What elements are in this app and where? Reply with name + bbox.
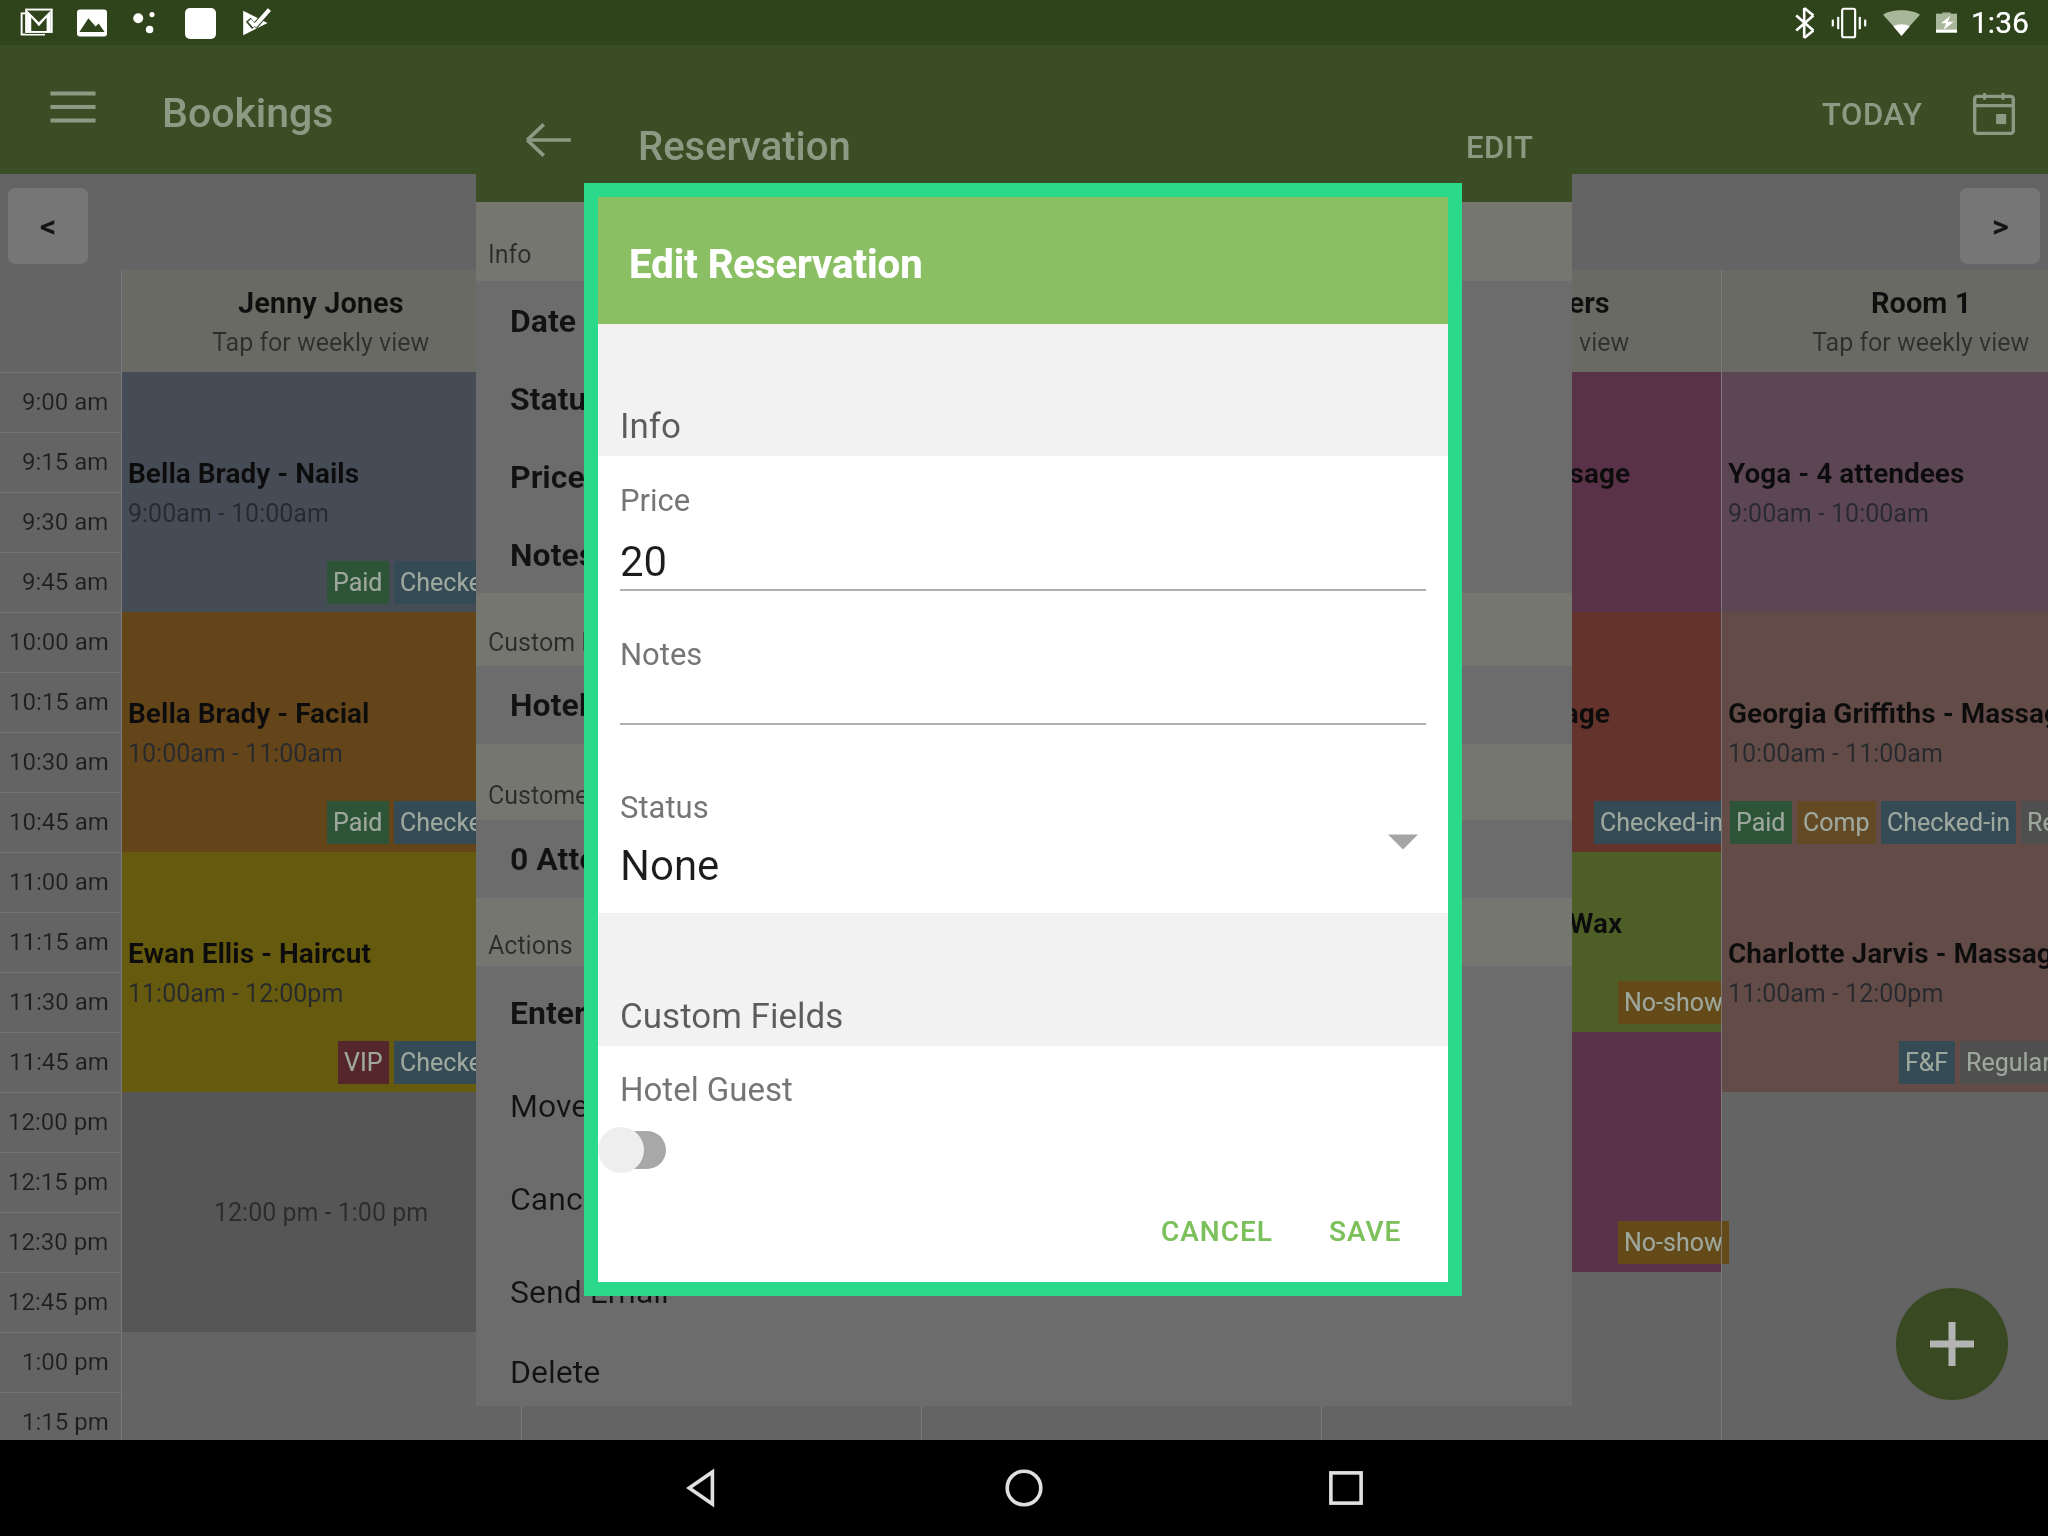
staticText: 20 [620,537,668,586]
staticText: Alan Archer - Facial [528,697,776,730]
staticText: Paid [873,568,923,597]
button[interactable]: Lucy Lawson - Leg Wax [1322,852,1721,1032]
button[interactable]: Bella Brady - Nails [122,372,521,612]
staticText: CANCEL [1161,1215,1273,1248]
staticText: 10:00 am [9,628,109,656]
staticText: 9:00am - 10:00am [1728,499,1929,528]
button[interactable]: Hotel Guest toggle [598,1125,690,1175]
staticText: Tap for weekly view [212,328,430,357]
staticText: No-show [1624,1228,1723,1257]
button[interactable]: Jane Jones - Nails [522,372,921,612]
button[interactable]: Price [476,438,1572,516]
button[interactable]: Send Email [476,1245,1572,1338]
button[interactable]: Status [476,360,1572,438]
button[interactable]: Back [541,1440,863,1536]
staticText: 11:30 am [9,988,109,1016]
button[interactable]: Paul Peters [521,270,921,372]
button[interactable]: Date [476,281,1572,360]
staticText: Yoga - 4 attendees [1728,457,1965,490]
staticText: < [40,207,57,245]
button[interactable]: Yoga - 4 attendees [1722,372,2048,612]
staticText: 12:45 pm [8,1288,109,1316]
button[interactable]: Ewan Ellis - Haircut [122,852,521,1092]
button[interactable]: Alan Archer - Facial [522,612,921,852]
staticText: 9:45 am [22,568,109,596]
staticText: Jane Jones - Nails [528,457,762,490]
staticText: Georgia Griffiths - Massage [1728,697,2048,730]
button[interactable]: Price [598,456,1448,591]
button[interactable]: Status [598,725,1448,913]
button[interactable]: CANCEL [1161,1215,1273,1248]
button[interactable]: Kate Kent - Massage [922,372,1321,612]
button[interactable]: Notes [598,591,1448,725]
staticText: 1:00 pm [22,1348,109,1376]
button[interactable]: Cancel [476,1152,1572,1245]
button[interactable]: Open navigation menu [40,74,106,140]
button[interactable]: 0 Attendees [476,820,1572,898]
button[interactable]: EDIT [1466,129,1534,165]
staticText: Edit Reservation [629,241,923,288]
button[interactable]: > [1960,188,2040,264]
staticText: Price [620,482,691,518]
button[interactable]: Lucy Lawson - Massage [1322,372,1721,612]
button[interactable]: Move [476,1059,1572,1152]
staticText: Move [510,1087,589,1125]
staticText: No-show [1624,988,1723,1017]
staticText: Regular Room [2027,808,2048,837]
button[interactable]: SAVE [1329,1215,1402,1248]
staticText: Custom Fields [620,996,844,1037]
staticText: 11:00am - 12:00pm [128,979,344,1008]
button[interactable]: Back [518,109,580,171]
staticText: Hotel Guest [510,686,680,724]
button[interactable]: Enter Payment [476,966,1572,1059]
button[interactable]: Add booking [1896,1288,2008,1400]
button[interactable]: 12:00 pm - 1:00 pm [122,1092,521,1332]
staticText: Bookings [162,89,334,137]
staticText: 9:30 am [22,508,109,536]
staticText: Checked-in [400,1048,523,1077]
staticText: F&F [1905,1048,1949,1077]
button[interactable]: Jenny Jones [121,270,521,372]
button[interactable]: Hotel Guest [476,666,1572,744]
staticText: Info [488,240,532,269]
button[interactable]: Peter Perry - Massage [1322,612,1721,852]
button[interactable]: Home [863,1440,1185,1536]
button[interactable]: < [8,188,88,264]
button[interactable]: Pick date [1965,85,2023,143]
button[interactable]: Charlotte Jarvis - Massage [1722,852,2048,1092]
button[interactable]: Bella Brady - Facial [122,612,521,852]
button[interactable]: Notes [476,516,1572,593]
button[interactable]: Sally Sanders [1321,270,1721,372]
button[interactable]: Sam Smith - Massage [922,612,1321,852]
staticText: > [1992,207,2009,245]
staticText: 9:15 am [22,448,109,476]
staticText: Tap for weekly view [1412,328,1630,357]
staticText: Date [510,302,577,340]
staticText: Actions [488,931,573,960]
staticText: Charlotte Jarvis - Massage [1728,937,2048,970]
staticText: Regular Room [1966,1048,2048,1077]
button[interactable]: Delete [476,1338,1572,1406]
staticText: None [620,841,720,890]
staticText: Status [510,380,603,418]
button[interactable]: Room 1 [1721,270,2048,372]
button[interactable]: Lucy Lawson - Wax [1322,1032,1721,1272]
staticText: SAVE [1329,1215,1402,1248]
staticText: 11:15 am [9,928,109,956]
staticText: Reservation [638,123,851,170]
staticText: 11:45am - 12:45pm [1328,1159,1544,1188]
button[interactable]: Mary Matthews [921,270,1321,372]
staticText: Status [620,789,709,825]
button[interactable]: TODAY [1822,96,1923,132]
staticText: Custom Fields [488,628,648,657]
button[interactable]: Recent apps [1185,1440,1507,1536]
staticText: Bella Brady - Facial [128,697,370,730]
staticText: 10:45 am [9,808,109,836]
button[interactable]: Georgia Griffiths - Massage [1722,612,2048,852]
